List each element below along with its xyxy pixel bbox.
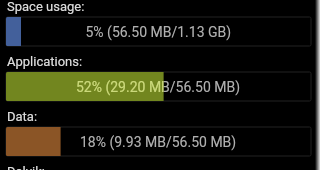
button[interactable]: [6, 127, 311, 156]
button[interactable]: [6, 17, 311, 46]
button[interactable]: Data:: [0, 101, 320, 127]
staticText: Dalvik:: [7, 164, 45, 170]
button[interactable]: Applications:: [0, 46, 320, 72]
button[interactable]: Space usage:: [0, 0, 320, 17]
button[interactable]: Dalvik:: [0, 156, 320, 170]
staticText: Space usage:: [7, 0, 85, 14]
staticText: Applications:: [7, 54, 83, 69]
staticText: Data:: [7, 109, 38, 124]
button[interactable]: [6, 72, 311, 101]
